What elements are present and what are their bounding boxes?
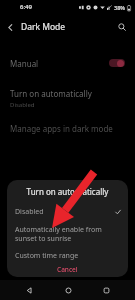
button[interactable]: Back	[20, 281, 38, 299]
staticText: Custom time range	[15, 251, 79, 261]
button[interactable]: Automatically enable from sunset to sunr…	[7, 225, 128, 243]
staticText: Automatically enable from sunset to sunr…	[15, 225, 118, 243]
staticText: Disabled	[10, 101, 35, 109]
staticText: Cancel	[57, 265, 78, 274]
staticText: Manual	[10, 58, 39, 69]
button[interactable]: Turn on automatically	[0, 86, 135, 111]
button[interactable]: Manual	[0, 52, 135, 74]
staticText: Turn on automatically	[10, 88, 92, 99]
button[interactable]: Manage apps in dark mode	[0, 121, 135, 136]
button[interactable]: Cancel	[49, 263, 86, 276]
staticText: 38%	[114, 4, 125, 11]
button[interactable]: Home	[59, 281, 77, 299]
button[interactable]: Recent apps	[97, 281, 115, 299]
staticText: Disabled	[15, 207, 44, 217]
button[interactable]: Custom time range	[7, 250, 128, 262]
staticText: Turn on automatically	[7, 186, 128, 197]
button[interactable]: Search	[113, 18, 131, 36]
staticText: Manage apps in dark mode	[10, 123, 113, 134]
staticText: Dark Mode	[21, 21, 66, 33]
staticText: 6:49	[20, 3, 32, 11]
button[interactable]: Disabled	[7, 205, 128, 219]
button[interactable]: Back	[0, 17, 20, 37]
